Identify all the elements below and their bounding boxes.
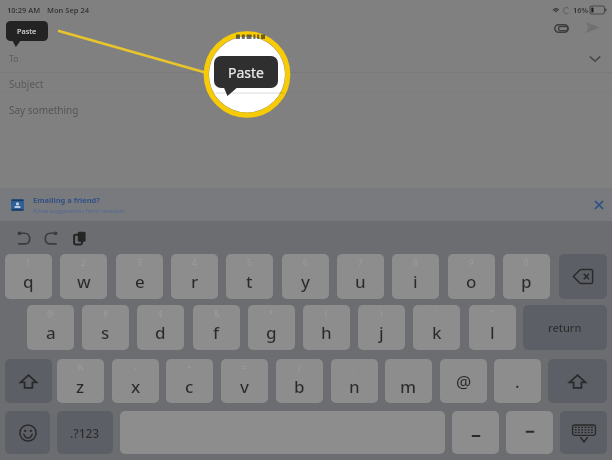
staticText: i <box>413 270 418 293</box>
staticText: @ <box>456 370 472 393</box>
button[interactable]: To <box>0 45 612 73</box>
staticText: Say something <box>9 103 79 117</box>
button[interactable]: & <box>193 305 240 350</box>
button[interactable]: 1 <box>5 254 52 299</box>
staticText: f <box>213 321 220 344</box>
button[interactable]: Undo <box>12 226 35 249</box>
other: Punctuation <box>515 420 545 446</box>
staticText: g <box>266 321 277 344</box>
button[interactable]: 5 <box>226 254 273 299</box>
staticText: e <box>135 270 145 293</box>
button[interactable]: Redo <box>39 226 62 249</box>
staticText: u <box>355 270 366 293</box>
staticText: q <box>23 270 34 293</box>
button[interactable]: % <box>57 359 104 403</box>
staticText: Mon Sep 24 <box>47 5 90 15</box>
button[interactable]: @ <box>440 359 487 403</box>
button[interactable]: Emoji <box>5 411 50 454</box>
staticText: 2 <box>81 257 86 268</box>
button[interactable]: ' <box>413 305 460 350</box>
staticText: Allow suggestions from contacts <box>33 207 125 215</box>
button[interactable]: 8 <box>392 254 439 299</box>
button[interactable]: 2 <box>60 254 107 299</box>
staticText: Subject <box>9 77 44 91</box>
staticText: o <box>466 270 477 293</box>
other: Shift <box>569 374 586 389</box>
button[interactable]: ; <box>331 359 378 403</box>
button[interactable]: . <box>494 359 541 403</box>
button[interactable]: * <box>248 305 295 350</box>
staticText: 1 <box>26 257 31 268</box>
staticText: z <box>76 375 85 398</box>
button[interactable]: / <box>276 359 323 403</box>
button[interactable]: " <box>469 305 516 350</box>
staticText: Paste <box>228 63 264 82</box>
staticText: ( <box>325 308 328 319</box>
button[interactable]: 3 <box>116 254 163 299</box>
other: Backspace <box>573 269 593 284</box>
staticText: 3 <box>137 257 142 268</box>
staticText: Paste <box>17 26 37 36</box>
staticText: ) <box>380 308 383 319</box>
button[interactable]: @ <box>27 305 74 350</box>
button[interactable]: : <box>385 359 432 403</box>
button[interactable]: - <box>112 359 159 403</box>
button[interactable]: Hide keyboard <box>560 411 607 454</box>
button[interactable]: $ <box>137 305 184 350</box>
staticText: s <box>101 321 110 344</box>
button[interactable]: 9 <box>448 254 495 299</box>
button[interactable]: 6 <box>282 254 329 299</box>
button[interactable]: Punctuation <box>506 411 553 454</box>
other: Emoji <box>19 424 37 442</box>
other: Punctuation <box>461 420 491 446</box>
staticText: % <box>77 362 84 373</box>
staticText: return <box>548 320 582 335</box>
button[interactable]: Punctuation <box>452 411 499 454</box>
button[interactable]: Paste <box>68 226 91 249</box>
button[interactable]: ) <box>358 305 405 350</box>
staticText: k <box>432 321 442 344</box>
button[interactable]: ( <box>303 305 350 350</box>
staticText: .?123 <box>70 425 100 441</box>
button[interactable]: Say something <box>0 99 612 121</box>
staticText: t <box>246 270 253 293</box>
staticText: l <box>490 321 495 344</box>
button[interactable]: Backspace <box>559 254 607 299</box>
button[interactable]: 0 <box>503 254 550 299</box>
staticText: 0 <box>524 257 529 268</box>
button[interactable]: 4 <box>171 254 218 299</box>
button[interactable]: Send <box>580 15 604 39</box>
staticText: a <box>46 321 56 344</box>
button[interactable]: 7 <box>337 254 384 299</box>
button[interactable]: # <box>82 305 129 350</box>
button[interactable]: .?123 <box>57 411 113 454</box>
button[interactable]: Dismiss suggestion <box>590 196 608 214</box>
staticText: x <box>131 375 141 398</box>
staticText: v <box>240 375 249 398</box>
button[interactable]: Attach <box>549 16 573 40</box>
button[interactable]: + <box>166 359 213 403</box>
staticText: . <box>515 370 520 393</box>
staticText: h <box>321 321 332 344</box>
staticText: 7 <box>358 257 363 268</box>
staticText: r <box>191 270 199 293</box>
staticText: n <box>349 375 360 398</box>
staticText: 4 <box>192 257 197 268</box>
button[interactable]: Shift <box>548 359 607 403</box>
other: Hide keyboard <box>571 423 597 443</box>
staticText: 5 <box>247 257 252 268</box>
button[interactable]: return <box>523 305 607 350</box>
staticText: + <box>187 362 192 373</box>
button[interactable]: Subject <box>0 74 612 93</box>
button[interactable]: Shift <box>5 359 52 403</box>
button[interactable]: = <box>221 359 268 403</box>
staticText: = <box>242 362 247 373</box>
staticText: To <box>9 53 19 65</box>
staticText: 16% <box>573 5 589 15</box>
